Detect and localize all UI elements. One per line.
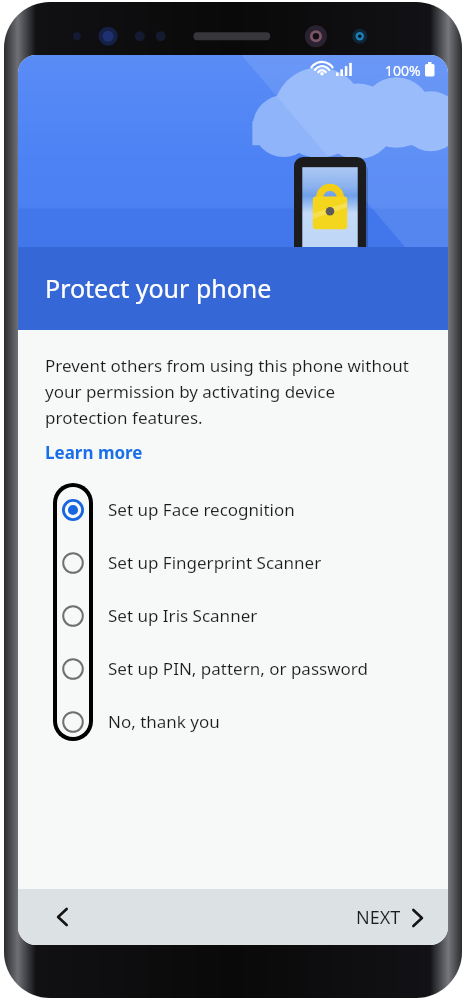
button[interactable]: Set up Fingerprint Scanner — [18, 536, 448, 589]
staticText: Set up Iris Scanner — [108, 604, 258, 627]
button[interactable]: NEXT — [348, 895, 432, 940]
staticText: NEXT — [356, 905, 401, 930]
button[interactable]: Set up Face recognition — [18, 483, 448, 536]
staticText: Learn more — [45, 441, 143, 464]
staticText: Prevent others from using this phone wit… — [45, 354, 412, 429]
staticText: Set up Fingerprint Scanner — [108, 551, 322, 574]
staticText: Set up Face recognition — [108, 498, 295, 521]
button[interactable]: Set up PIN, pattern, or password — [18, 642, 448, 695]
button[interactable]: No, thank you — [18, 695, 448, 748]
staticText: Protect your phone — [45, 271, 272, 305]
staticText: Set up PIN, pattern, or password — [108, 657, 368, 680]
staticText: No, thank you — [108, 710, 220, 733]
staticText: 100% — [385, 61, 421, 80]
button[interactable]: Back — [38, 893, 86, 941]
button[interactable]: Set up Iris Scanner — [18, 589, 448, 642]
button[interactable]: Learn more — [45, 440, 143, 465]
